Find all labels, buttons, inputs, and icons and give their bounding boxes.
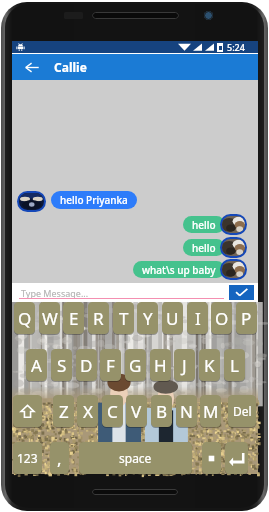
staticText: U <box>166 307 179 330</box>
button[interactable]: Del <box>228 395 256 427</box>
button[interactable]: A <box>26 349 47 381</box>
button[interactable]: H <box>150 349 171 381</box>
staticText: K <box>204 354 215 377</box>
staticText: hello <box>192 241 216 255</box>
button[interactable]: Q <box>14 302 35 334</box>
staticText: what\s up baby <box>142 263 216 277</box>
staticText: T <box>119 307 129 330</box>
button[interactable]: S <box>51 349 72 381</box>
staticText: C <box>107 400 118 423</box>
button[interactable]: Send <box>229 285 254 300</box>
staticText: hello Priyanka <box>60 193 128 207</box>
button[interactable]: , <box>50 442 69 474</box>
button[interactable]: E <box>63 302 84 334</box>
button[interactable]: N <box>176 395 197 427</box>
button[interactable]: T <box>113 302 134 334</box>
button[interactable]: D <box>76 349 97 381</box>
button[interactable]: U <box>162 302 183 334</box>
button[interactable]: 123 <box>13 442 42 474</box>
staticText: F <box>106 354 115 377</box>
staticText: Del <box>233 403 252 419</box>
button[interactable]: M <box>200 395 221 427</box>
button[interactable]: Z <box>53 395 74 427</box>
staticText: G <box>129 354 142 377</box>
button[interactable]: space <box>79 442 192 474</box>
button[interactable]: R <box>88 302 109 334</box>
button[interactable]: L <box>224 349 245 381</box>
staticText: hello <box>192 218 216 232</box>
button[interactable]: C <box>102 395 123 427</box>
staticText: J <box>182 354 187 377</box>
button[interactable]: G <box>125 349 146 381</box>
button[interactable]: hello <box>183 216 225 233</box>
staticText: D <box>80 354 93 377</box>
staticText: H <box>154 354 167 377</box>
staticText: Z <box>59 400 69 423</box>
button[interactable]: Enter <box>225 442 248 474</box>
button[interactable]: what\s up baby <box>133 261 225 278</box>
staticText: R <box>93 307 104 330</box>
staticText: O <box>215 307 229 330</box>
button[interactable]: X <box>77 395 98 427</box>
staticText: Y <box>143 307 153 330</box>
button[interactable]: J <box>174 349 195 381</box>
staticText: 123 <box>17 450 38 466</box>
button[interactable]: P <box>236 302 257 334</box>
button[interactable]: W <box>39 302 60 334</box>
button[interactable]: F <box>100 349 121 381</box>
staticText: Q <box>18 307 32 330</box>
staticText: 5:24 <box>227 41 245 53</box>
button[interactable]: Y <box>137 302 158 334</box>
staticText: N <box>180 400 193 423</box>
button[interactable]: B <box>151 395 172 427</box>
staticText: I <box>195 307 201 330</box>
staticText: P <box>241 307 252 330</box>
staticText: space <box>119 450 152 466</box>
staticText: Type Message... <box>21 287 89 299</box>
button[interactable]: V <box>126 395 147 427</box>
staticText: Callie <box>54 59 87 75</box>
staticText: E <box>69 307 79 330</box>
button[interactable]: I <box>187 302 208 334</box>
staticText: W <box>42 307 58 330</box>
button[interactable]: Back <box>20 54 44 80</box>
button[interactable]: Voice <box>202 442 221 474</box>
staticText: L <box>230 354 239 377</box>
staticText: A <box>31 354 42 377</box>
staticText: V <box>131 400 142 423</box>
button[interactable]: hello Priyanka <box>51 191 137 209</box>
staticText: S <box>57 354 67 377</box>
button[interactable]: Shift <box>13 395 42 427</box>
button[interactable]: hello <box>183 239 225 256</box>
staticText: B <box>156 400 168 423</box>
staticText: M <box>203 400 219 423</box>
button[interactable]: K <box>199 349 220 381</box>
staticText: X <box>83 400 93 423</box>
button[interactable]: O <box>211 302 232 334</box>
staticText: , <box>57 447 62 470</box>
